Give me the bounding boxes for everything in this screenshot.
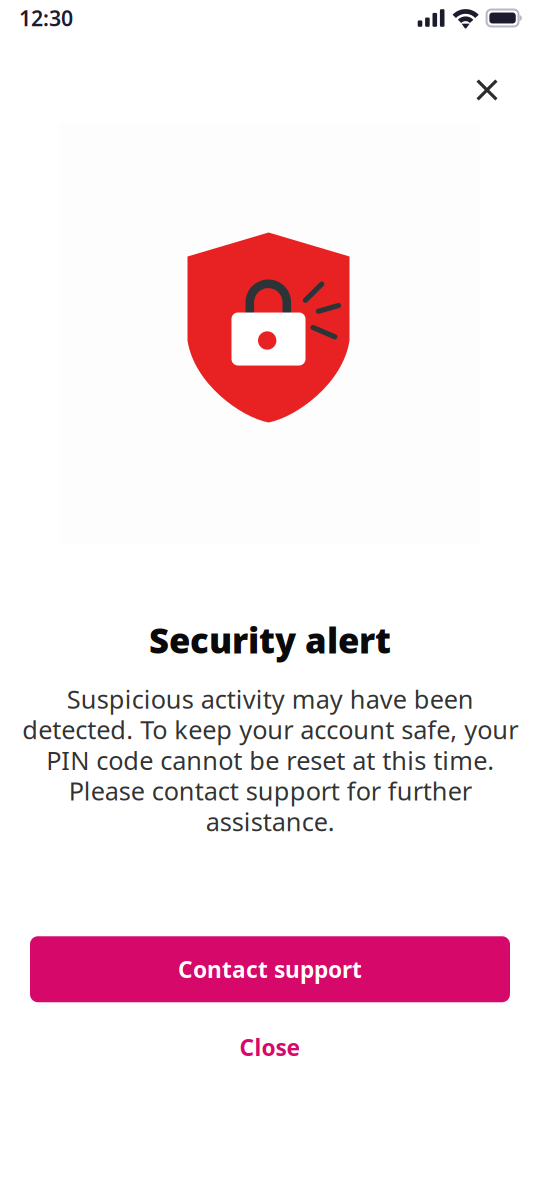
- staticText: Suspicious activity may have been detect…: [22, 682, 518, 838]
- staticText: Contact support: [178, 954, 362, 984]
- staticText: Close: [239, 1032, 300, 1062]
- button[interactable]: Close: [30, 1021, 510, 1073]
- staticText: Security alert: [149, 617, 391, 663]
- button[interactable]: Close: [465, 68, 509, 112]
- button[interactable]: Contact support: [30, 936, 510, 1002]
- staticText: 12:30: [19, 4, 73, 32]
